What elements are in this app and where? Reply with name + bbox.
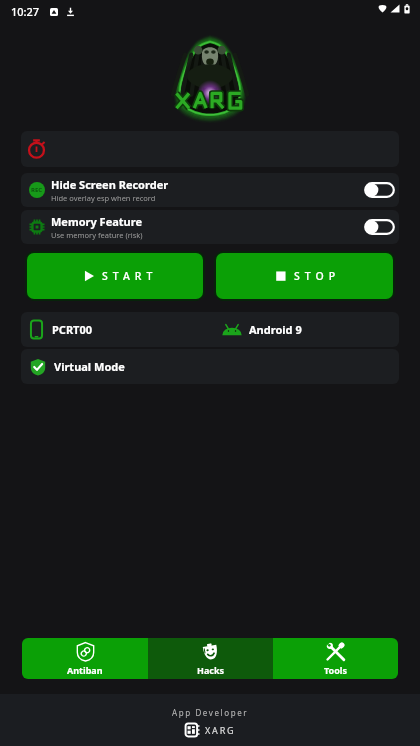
button[interactable]: Toggle	[364, 219, 395, 235]
button[interactable]: PCRT00	[21, 312, 399, 347]
button[interactable]: Memory Feature	[21, 210, 399, 244]
staticText: REC	[31, 186, 43, 194]
staticText: Android 9	[249, 322, 302, 337]
staticText: XARG	[205, 724, 236, 736]
staticText: Memory Feature	[51, 214, 142, 229]
staticText: Use memory feature (risk)	[51, 230, 143, 240]
staticText: PCRT00	[52, 322, 93, 337]
button[interactable]: Timer	[21, 131, 399, 167]
staticText: 10:27	[11, 4, 40, 19]
button[interactable]: REC	[21, 173, 399, 207]
button[interactable]: Tools	[273, 638, 398, 679]
staticText: Hide Screen Recorder	[51, 177, 169, 192]
button[interactable]: START	[27, 253, 203, 299]
staticText: Antiban	[67, 664, 103, 676]
button[interactable]: Virtual Mode	[21, 349, 399, 384]
staticText: Tools	[324, 664, 348, 676]
button[interactable]: Antiban	[22, 638, 148, 679]
staticText: App Developer	[172, 707, 249, 718]
button[interactable]: STOP	[216, 253, 393, 299]
button[interactable]: Toggle	[364, 182, 395, 198]
button[interactable]: Hacks	[148, 638, 273, 679]
staticText: START	[102, 269, 158, 283]
staticText: Hacks	[197, 664, 225, 676]
staticText: Hide overlay esp when record	[51, 193, 156, 203]
staticText: STOP	[294, 269, 341, 283]
staticText: Virtual Mode	[54, 359, 125, 374]
